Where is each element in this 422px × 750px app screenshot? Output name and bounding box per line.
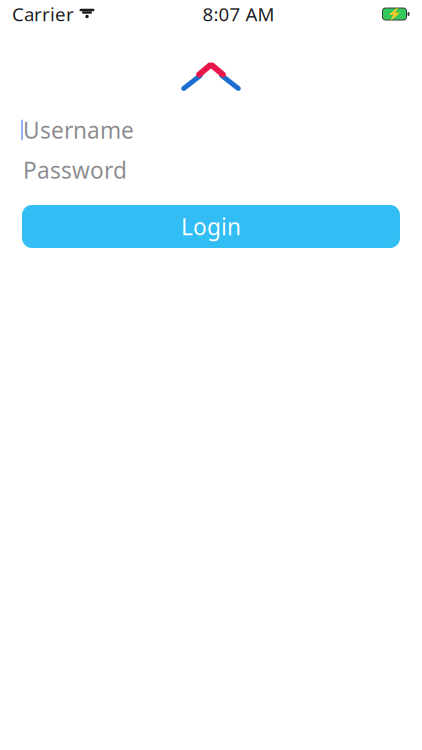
button[interactable]: Username: [0, 110, 422, 150]
button[interactable]: Login: [22, 205, 400, 248]
staticText: Login: [181, 211, 241, 241]
staticText: ⚡: [387, 7, 402, 21]
staticText: 8:07 AM: [202, 2, 274, 26]
staticText: Carrier: [12, 2, 74, 26]
staticText: Username: [23, 115, 134, 145]
staticText: Password: [23, 155, 127, 185]
button[interactable]: Password: [0, 150, 422, 190]
